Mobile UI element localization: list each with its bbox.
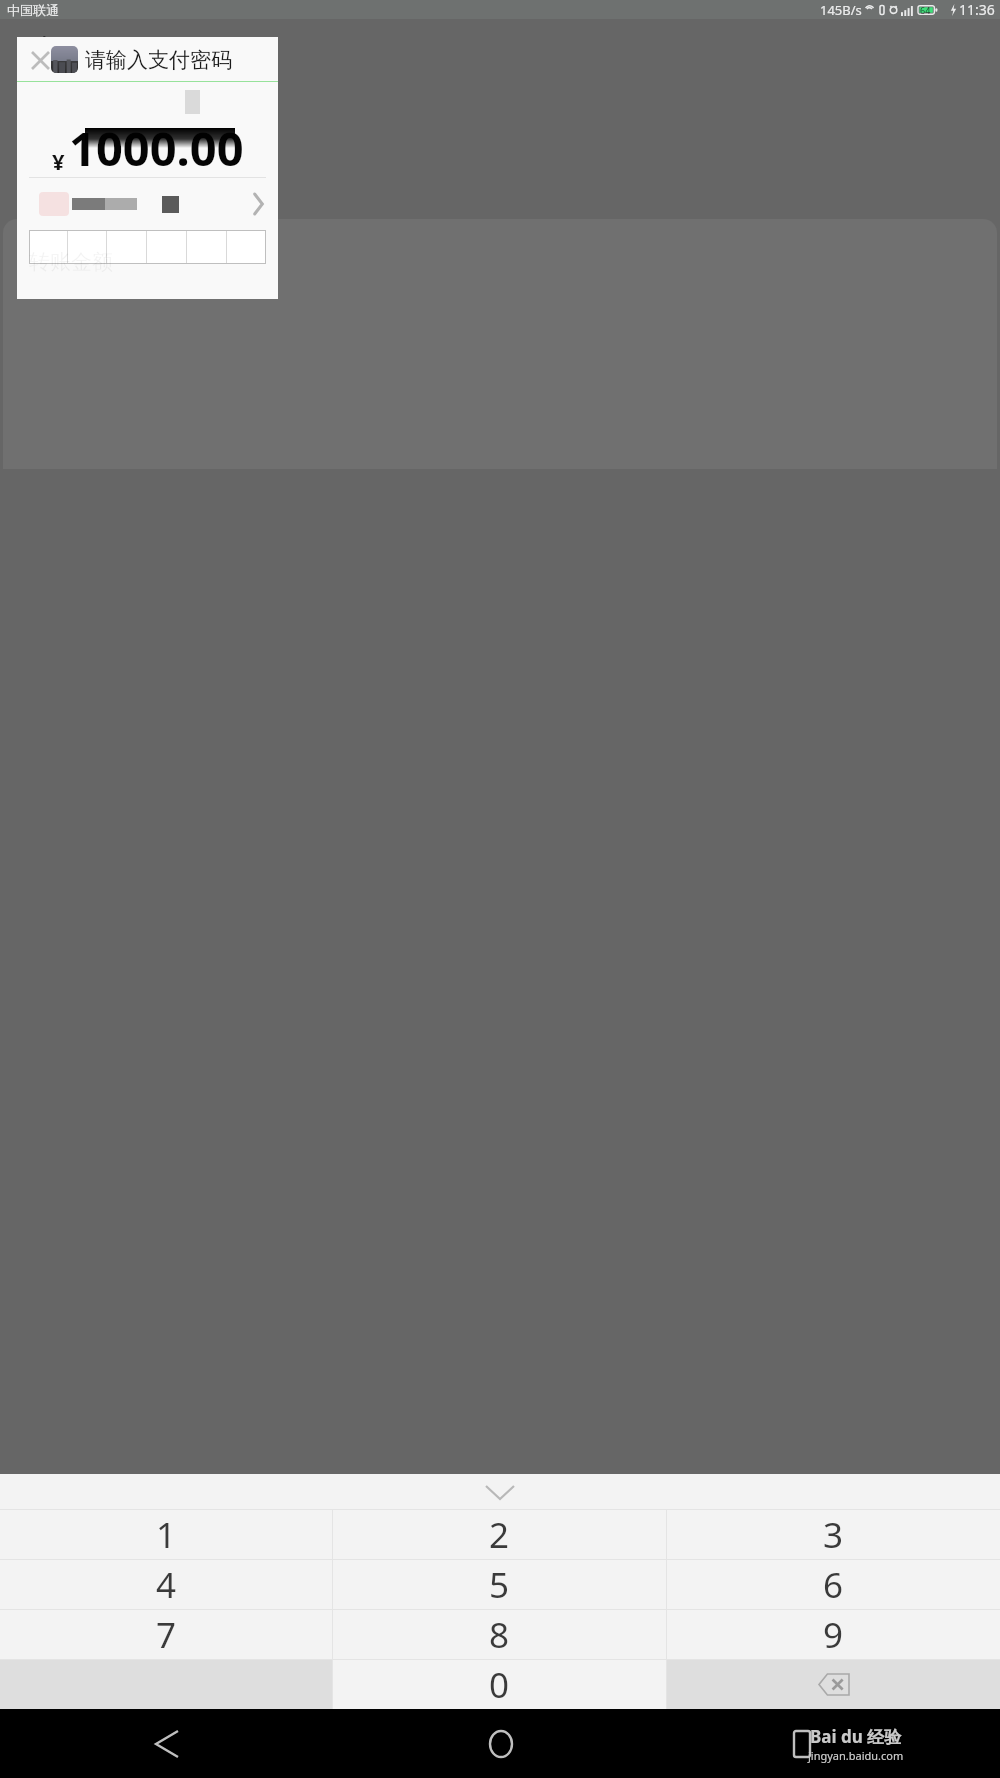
button[interactable]: Delete <box>667 1660 1000 1709</box>
button[interactable]: 0 <box>333 1660 666 1709</box>
staticText: 0 <box>489 1661 510 1709</box>
staticText: 转账金额 <box>29 249 113 275</box>
staticText: 9 <box>823 1611 844 1659</box>
button[interactable]: 6 <box>667 1560 1000 1609</box>
button[interactable]: Close <box>24 44 56 76</box>
staticText: 转账 <box>58 39 110 72</box>
button[interactable]: 5 <box>333 1560 666 1609</box>
staticText: 8 <box>489 1611 510 1659</box>
button[interactable]: 8 <box>333 1610 666 1659</box>
staticText: ¥ <box>52 146 65 176</box>
staticText: 6 <box>823 1561 844 1609</box>
button[interactable]: Back <box>0 1709 334 1778</box>
staticText: 4 <box>156 1561 177 1609</box>
staticText: 3 <box>823 1511 844 1559</box>
staticText: 7 <box>156 1611 177 1659</box>
button[interactable]: Hide keypad <box>0 1474 1000 1510</box>
button[interactable] <box>29 230 266 264</box>
button[interactable]: 9 <box>667 1610 1000 1659</box>
staticText: 请输入支付密码 <box>85 47 232 73</box>
button[interactable]: 3 <box>667 1510 1000 1559</box>
staticText: jingyan.baidu.com <box>808 1748 904 1763</box>
staticText: 1000.00 <box>69 116 244 180</box>
staticText: 11:36 <box>959 0 995 19</box>
button[interactable]: 7 <box>0 1610 332 1659</box>
button[interactable]: Recents <box>667 1709 1000 1778</box>
staticText: 145B/s <box>820 1 862 19</box>
staticText: 64 <box>920 4 931 16</box>
button[interactable]: 1 <box>0 1510 332 1559</box>
staticText: 2 <box>489 1511 510 1559</box>
staticText: 中国联通 <box>7 2 59 18</box>
button[interactable] <box>17 178 278 230</box>
button[interactable]: 2 <box>333 1510 666 1559</box>
staticText: 5 <box>489 1561 510 1609</box>
button[interactable]: 4 <box>0 1560 332 1609</box>
staticText: Bai du 经验 <box>810 1725 902 1748</box>
staticText: 1 <box>156 1511 177 1559</box>
button[interactable]: Home <box>334 1709 667 1778</box>
